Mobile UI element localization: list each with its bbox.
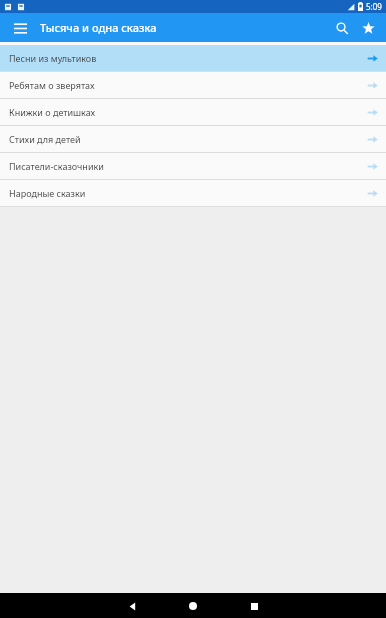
button[interactable]: Песни из мультиков xyxy=(0,45,386,71)
button[interactable]: Search xyxy=(330,16,354,40)
staticText: Стихи для детей xyxy=(9,133,81,145)
staticText: Народные сказки xyxy=(9,187,86,199)
button[interactable]: Стихи для детей xyxy=(0,126,386,152)
button[interactable]: Back xyxy=(121,595,143,617)
button[interactable]: Писатели-сказочники xyxy=(0,153,386,179)
staticText: Тысяча и одна сказка xyxy=(40,20,157,35)
button[interactable]: Книжки о детишках xyxy=(0,99,386,125)
button[interactable]: Home xyxy=(182,595,204,617)
button[interactable]: Recent apps xyxy=(243,595,265,617)
button[interactable]: Ребятам о зверятах xyxy=(0,72,386,98)
button[interactable]: Favorites xyxy=(356,16,380,40)
staticText: 5:09 xyxy=(366,1,382,12)
button[interactable]: Народные сказки xyxy=(0,180,386,206)
staticText: Песни из мультиков xyxy=(9,52,97,64)
staticText: Писатели-сказочники xyxy=(9,160,104,172)
staticText: Книжки о детишках xyxy=(9,106,96,118)
staticText: Ребятам о зверятах xyxy=(9,79,95,91)
button[interactable]: Open navigation menu xyxy=(8,16,32,40)
